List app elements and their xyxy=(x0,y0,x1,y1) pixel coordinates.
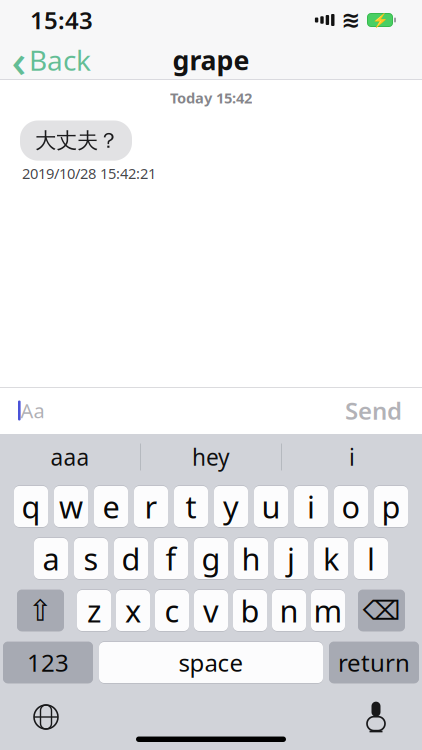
staticText: Back xyxy=(29,41,91,79)
button[interactable] xyxy=(54,485,88,528)
button[interactable] xyxy=(154,537,188,580)
button[interactable] xyxy=(114,537,148,580)
staticText: w xyxy=(59,486,83,527)
staticText: hey xyxy=(192,442,230,472)
button[interactable] xyxy=(155,589,189,632)
staticText: Send xyxy=(345,395,402,426)
staticText: f xyxy=(165,538,176,579)
staticText: grape xyxy=(172,42,249,78)
staticText: i xyxy=(307,486,315,527)
button[interactable] xyxy=(116,589,150,632)
staticText: n xyxy=(279,590,298,631)
staticText: p xyxy=(381,486,400,527)
staticText: t xyxy=(185,486,196,527)
staticText: 2019/10/28 15:42:21 xyxy=(22,164,156,183)
button[interactable]: Numbers xyxy=(3,641,93,684)
button[interactable] xyxy=(234,537,268,580)
button[interactable] xyxy=(272,589,306,632)
button[interactable] xyxy=(311,589,345,632)
button[interactable] xyxy=(274,537,308,580)
staticText: c xyxy=(164,590,179,631)
button[interactable]: Return xyxy=(329,641,419,684)
staticText: g xyxy=(201,538,220,579)
button[interactable] xyxy=(194,589,228,632)
staticText: k xyxy=(323,538,339,579)
staticText: y xyxy=(223,486,239,527)
button[interactable]: Next keyboard xyxy=(24,695,68,739)
button[interactable]: Send xyxy=(331,386,416,435)
staticText: o xyxy=(341,486,360,527)
staticText: 大丈夫？ xyxy=(35,127,119,154)
button[interactable] xyxy=(374,485,408,528)
staticText: aaa xyxy=(50,442,89,472)
staticText: l xyxy=(367,538,375,579)
button[interactable]: aaa xyxy=(0,434,140,480)
button[interactable]: Space xyxy=(99,641,323,684)
staticText: z xyxy=(87,590,101,631)
staticText: e xyxy=(102,486,119,527)
button[interactable]: hey xyxy=(141,434,281,480)
button[interactable]: Shift xyxy=(17,589,64,632)
button[interactable]: Delete xyxy=(358,589,405,632)
button[interactable] xyxy=(233,589,267,632)
staticText: h xyxy=(241,538,260,579)
staticText: Today 15:42 xyxy=(170,88,252,107)
button[interactable] xyxy=(34,537,68,580)
staticText: b xyxy=(240,590,259,631)
button[interactable] xyxy=(74,537,108,580)
button[interactable] xyxy=(254,485,288,528)
button[interactable]: Dictate xyxy=(354,695,398,739)
staticText: ⌫ xyxy=(362,595,400,626)
button[interactable] xyxy=(214,485,248,528)
staticText: r xyxy=(144,486,157,527)
staticText: ‹ xyxy=(11,30,26,90)
button[interactable]: ‹ xyxy=(0,37,91,83)
button[interactable] xyxy=(354,537,388,580)
staticText: 15:43 xyxy=(30,4,93,36)
staticText: space xyxy=(178,647,243,678)
button[interactable] xyxy=(314,537,348,580)
staticText: x xyxy=(125,590,141,631)
staticText: ⇧ xyxy=(28,594,53,627)
staticText: u xyxy=(261,486,280,527)
staticText: ⚡ xyxy=(371,12,388,28)
button[interactable] xyxy=(77,589,111,632)
button[interactable] xyxy=(334,485,368,528)
button[interactable] xyxy=(194,537,228,580)
staticText: s xyxy=(83,538,98,579)
button[interactable] xyxy=(134,485,168,528)
staticText: i xyxy=(349,442,355,472)
button[interactable] xyxy=(174,485,208,528)
staticText: a xyxy=(42,538,59,579)
staticText: v xyxy=(203,590,219,631)
staticText: 123 xyxy=(27,647,69,678)
button[interactable] xyxy=(14,485,48,528)
staticText: q xyxy=(21,486,40,527)
button[interactable] xyxy=(294,485,328,528)
staticText: return xyxy=(338,647,410,678)
button[interactable] xyxy=(94,485,128,528)
staticText: m xyxy=(313,590,342,631)
staticText: j xyxy=(287,538,295,579)
staticText: ≋ xyxy=(341,7,360,33)
staticText: d xyxy=(121,538,140,579)
staticText: Aa xyxy=(21,397,45,424)
button[interactable]: i xyxy=(282,434,422,480)
